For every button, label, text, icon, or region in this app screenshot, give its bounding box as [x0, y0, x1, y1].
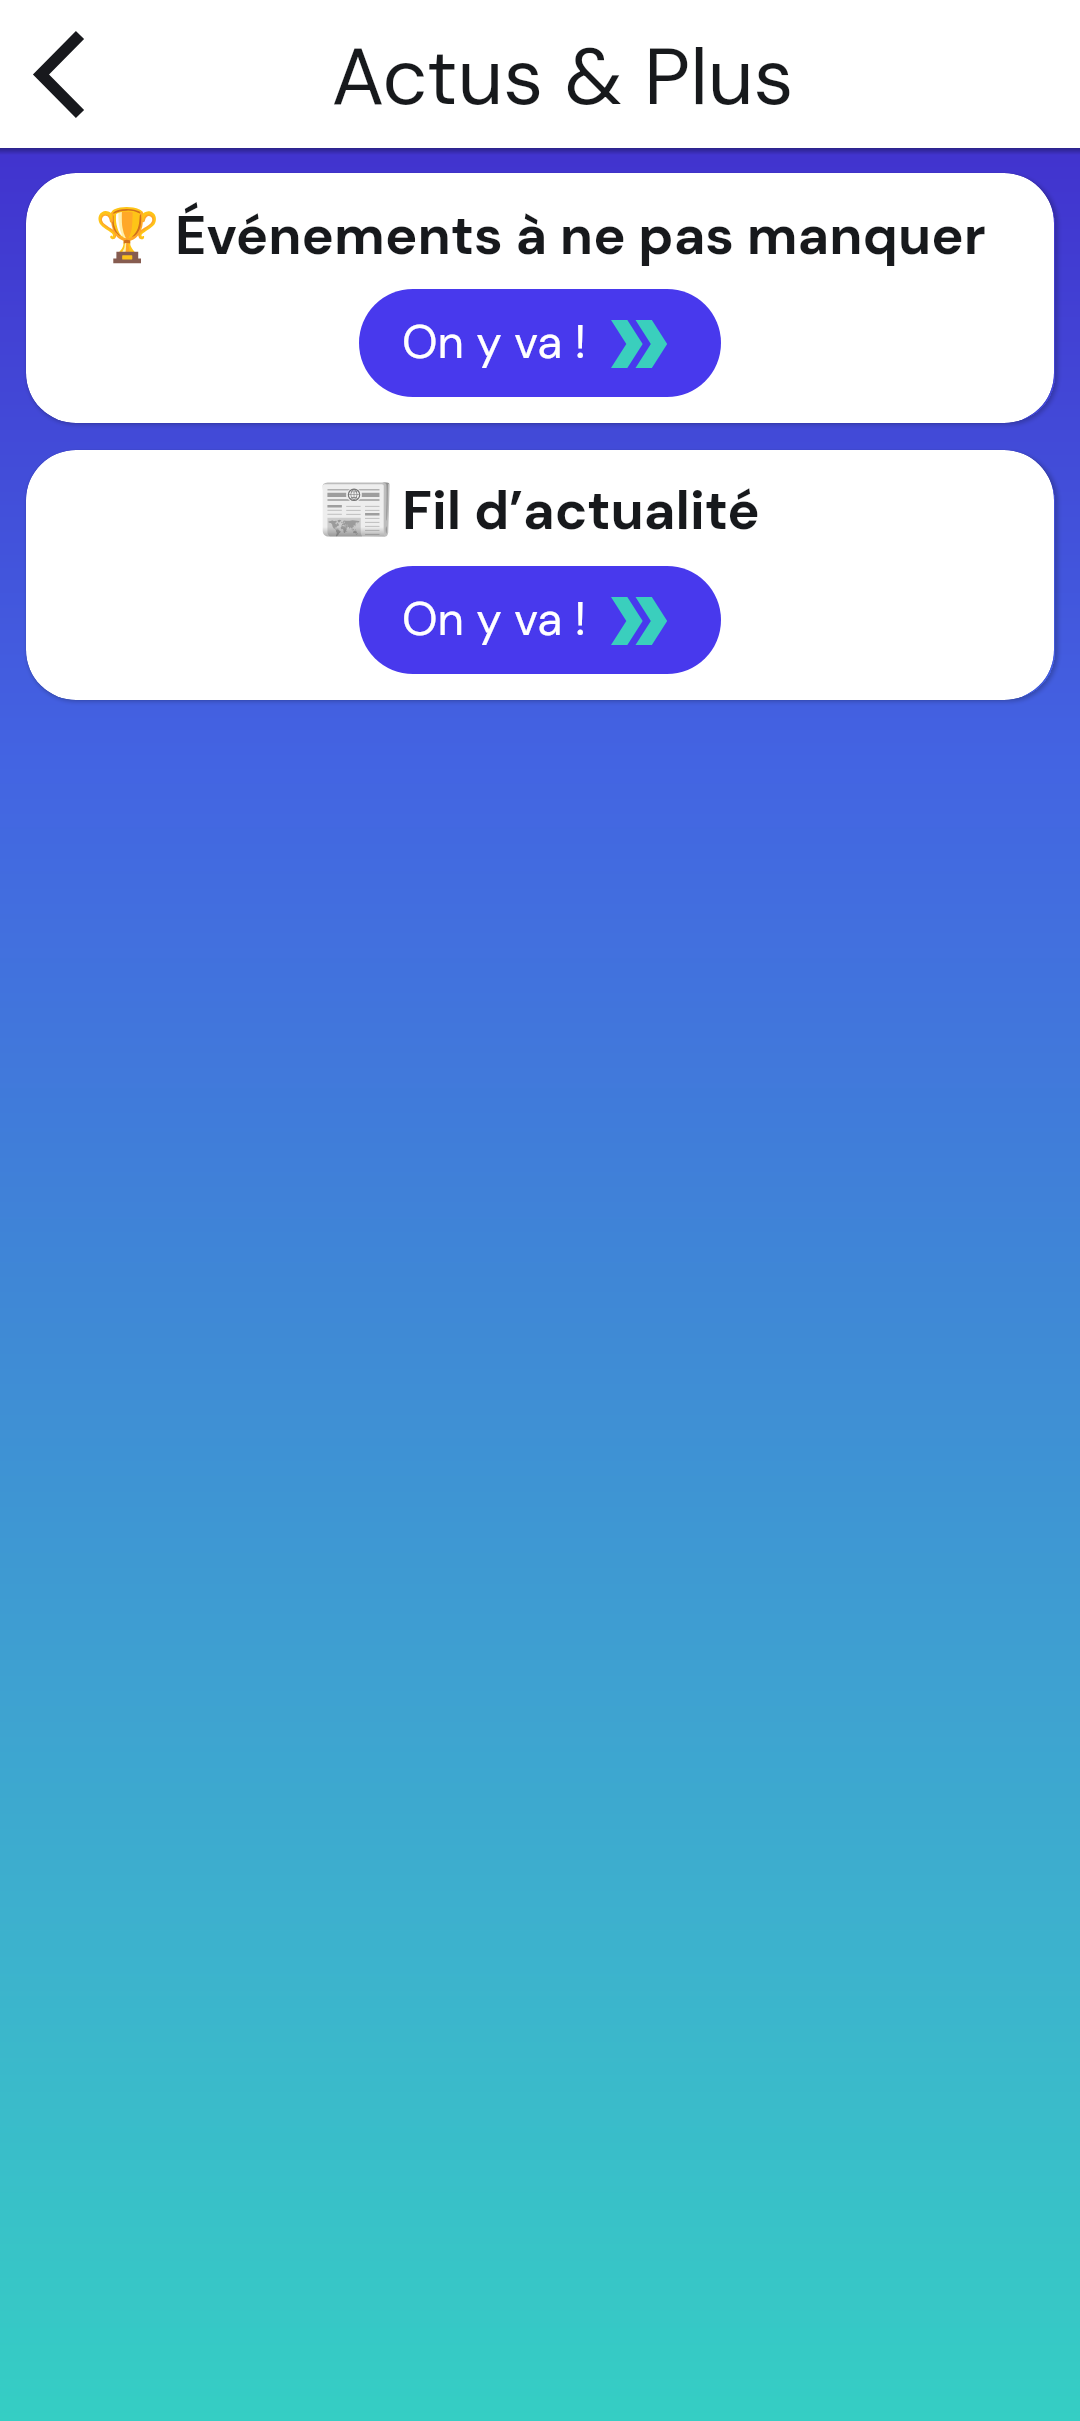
staticText: Actus & Plus: [331, 25, 794, 129]
button[interactable]: Back: [8, 22, 112, 126]
staticText: 📰: [317, 473, 396, 547]
button[interactable]: 📰: [26, 450, 1054, 700]
button[interactable]: 🏆: [26, 173, 1054, 423]
staticText: On y va !: [402, 312, 586, 372]
staticText: 🏆: [95, 205, 160, 266]
staticText: Fil d’actualité: [402, 475, 760, 545]
button[interactable]: On y va !: [359, 289, 721, 397]
button[interactable]: On y va !: [359, 566, 721, 674]
staticText: On y va !: [402, 589, 586, 649]
staticText: Événements à ne pas manquer: [175, 200, 986, 270]
